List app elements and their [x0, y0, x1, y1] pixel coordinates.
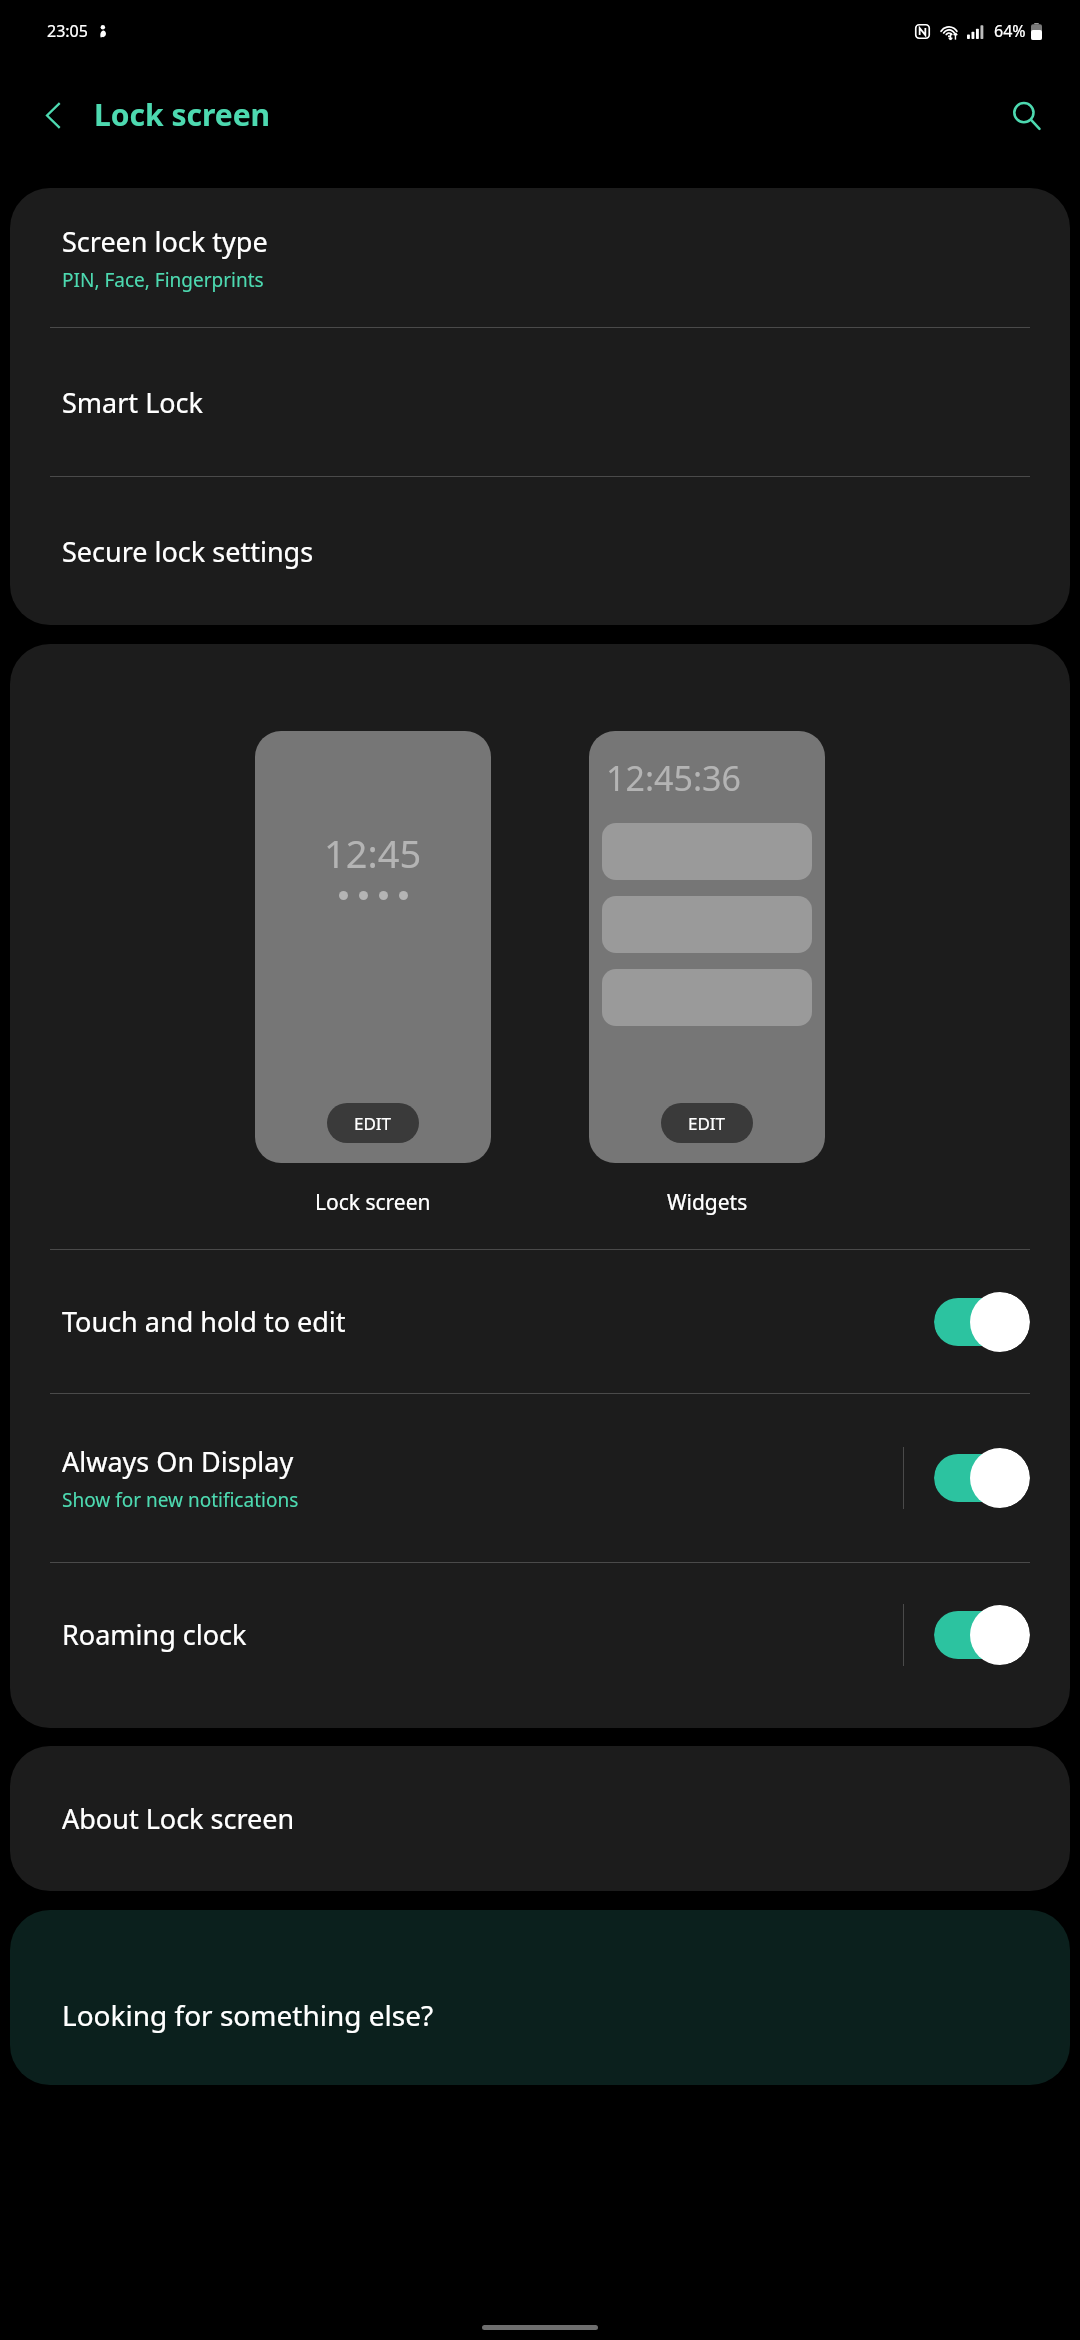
button[interactable]: Roaming clock: [934, 1605, 1030, 1665]
button[interactable]: Screen lock type: [10, 188, 1070, 327]
staticText: Widgets: [667, 1188, 748, 1217]
staticText: 23:05: [47, 20, 88, 42]
button[interactable]: 12:45:36: [589, 731, 825, 1163]
button[interactable]: Always On Display: [10, 1394, 1070, 1562]
staticText: Screen lock type: [62, 223, 268, 260]
button[interactable]: EDIT: [661, 1103, 753, 1143]
button[interactable]: Roaming clock: [10, 1563, 1070, 1706]
button[interactable]: Looking for something else?: [10, 1910, 1070, 2085]
staticText: About Lock screen: [62, 1800, 295, 1837]
button[interactable]: About Lock screen: [10, 1746, 1070, 1891]
staticText: Lock screen: [94, 94, 271, 135]
staticText: 12:45: [324, 827, 422, 879]
button[interactable]: Back: [26, 88, 80, 142]
button[interactable]: Secure lock settings: [10, 477, 1070, 625]
staticText: PIN, Face, Fingerprints: [62, 267, 264, 293]
staticText: 12:45:36: [606, 755, 741, 801]
staticText: Show for new notifications: [62, 1487, 299, 1513]
staticText: Secure lock settings: [62, 533, 314, 570]
staticText: Roaming clock: [62, 1616, 247, 1653]
button[interactable]: EDIT: [327, 1103, 419, 1143]
button[interactable]: Smart Lock: [10, 328, 1070, 476]
button[interactable]: Always On Display: [934, 1448, 1030, 1508]
staticText: EDIT: [688, 1112, 726, 1135]
staticText: Smart Lock: [62, 384, 203, 421]
button[interactable]: Touch and hold to edit: [10, 1250, 1070, 1393]
staticText: 64%: [994, 20, 1026, 42]
staticText: Touch and hold to edit: [62, 1303, 346, 1340]
button[interactable]: Touch and hold to edit: [934, 1292, 1030, 1352]
button[interactable]: Search: [998, 87, 1054, 143]
staticText: Looking for something else?: [62, 1996, 434, 2034]
button[interactable]: 12:45: [255, 731, 491, 1163]
staticText: EDIT: [354, 1112, 392, 1135]
staticText: Always On Display: [62, 1443, 294, 1480]
staticText: Lock screen: [315, 1188, 431, 1217]
